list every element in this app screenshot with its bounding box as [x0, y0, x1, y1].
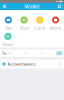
- button[interactable]: Pay: [0, 17, 16, 30]
- staticText: More: [3, 42, 13, 47]
- button[interactable]: Search: [56, 3, 62, 10]
- staticText: Scan: [20, 25, 28, 30]
- staticText: Account balance: [7, 61, 35, 67]
- button[interactable]: Alerts: [48, 17, 64, 30]
- staticText: Alerts: [50, 25, 61, 30]
- staticText: Pay: [5, 25, 11, 30]
- staticText: Wallet: [24, 3, 39, 10]
- button[interactable]: Go: [56, 51, 62, 55]
- button[interactable]: Scan: [16, 17, 32, 30]
- button[interactable]: Account balance: [0, 59, 64, 68]
- button[interactable]: More: [0, 33, 16, 46]
- button[interactable]: Menu: [1, 3, 7, 10]
- staticText: To: [2, 51, 6, 56]
- staticText: Cards: [34, 25, 45, 30]
- button[interactable]: Cards: [32, 17, 48, 30]
